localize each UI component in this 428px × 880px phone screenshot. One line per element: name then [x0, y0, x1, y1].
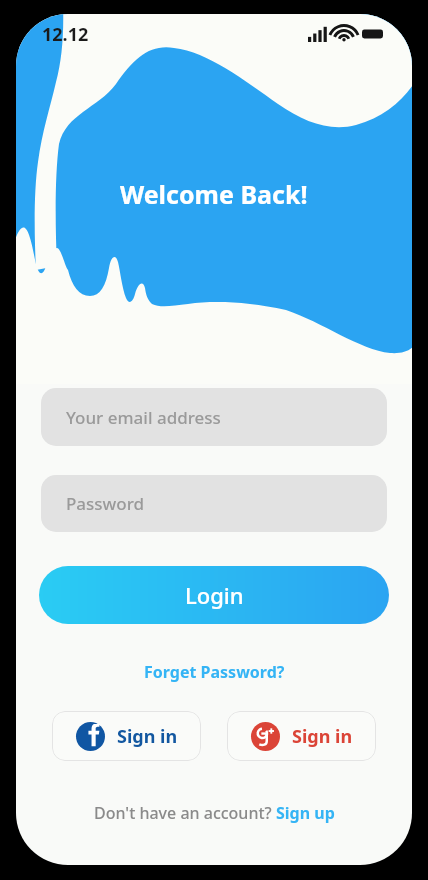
staticText: Don't have an account?	[94, 802, 276, 824]
staticText: Password	[66, 492, 145, 515]
staticText: Sign in	[117, 724, 178, 749]
button[interactable]: Login	[39, 566, 389, 624]
staticText: Login	[185, 580, 244, 610]
button[interactable]: Forget Password?	[144, 661, 285, 683]
button[interactable]: Password	[41, 475, 387, 532]
staticText: Welcome Back!	[120, 177, 308, 211]
button[interactable]: Sign in	[227, 711, 376, 761]
staticText: Your email address	[66, 406, 221, 429]
staticText: Sign in	[292, 724, 353, 749]
button[interactable]: Your email address	[41, 388, 387, 446]
staticText: 12.12	[42, 22, 89, 47]
button[interactable]: Sign up	[276, 802, 335, 824]
button[interactable]: Sign in	[52, 711, 201, 761]
